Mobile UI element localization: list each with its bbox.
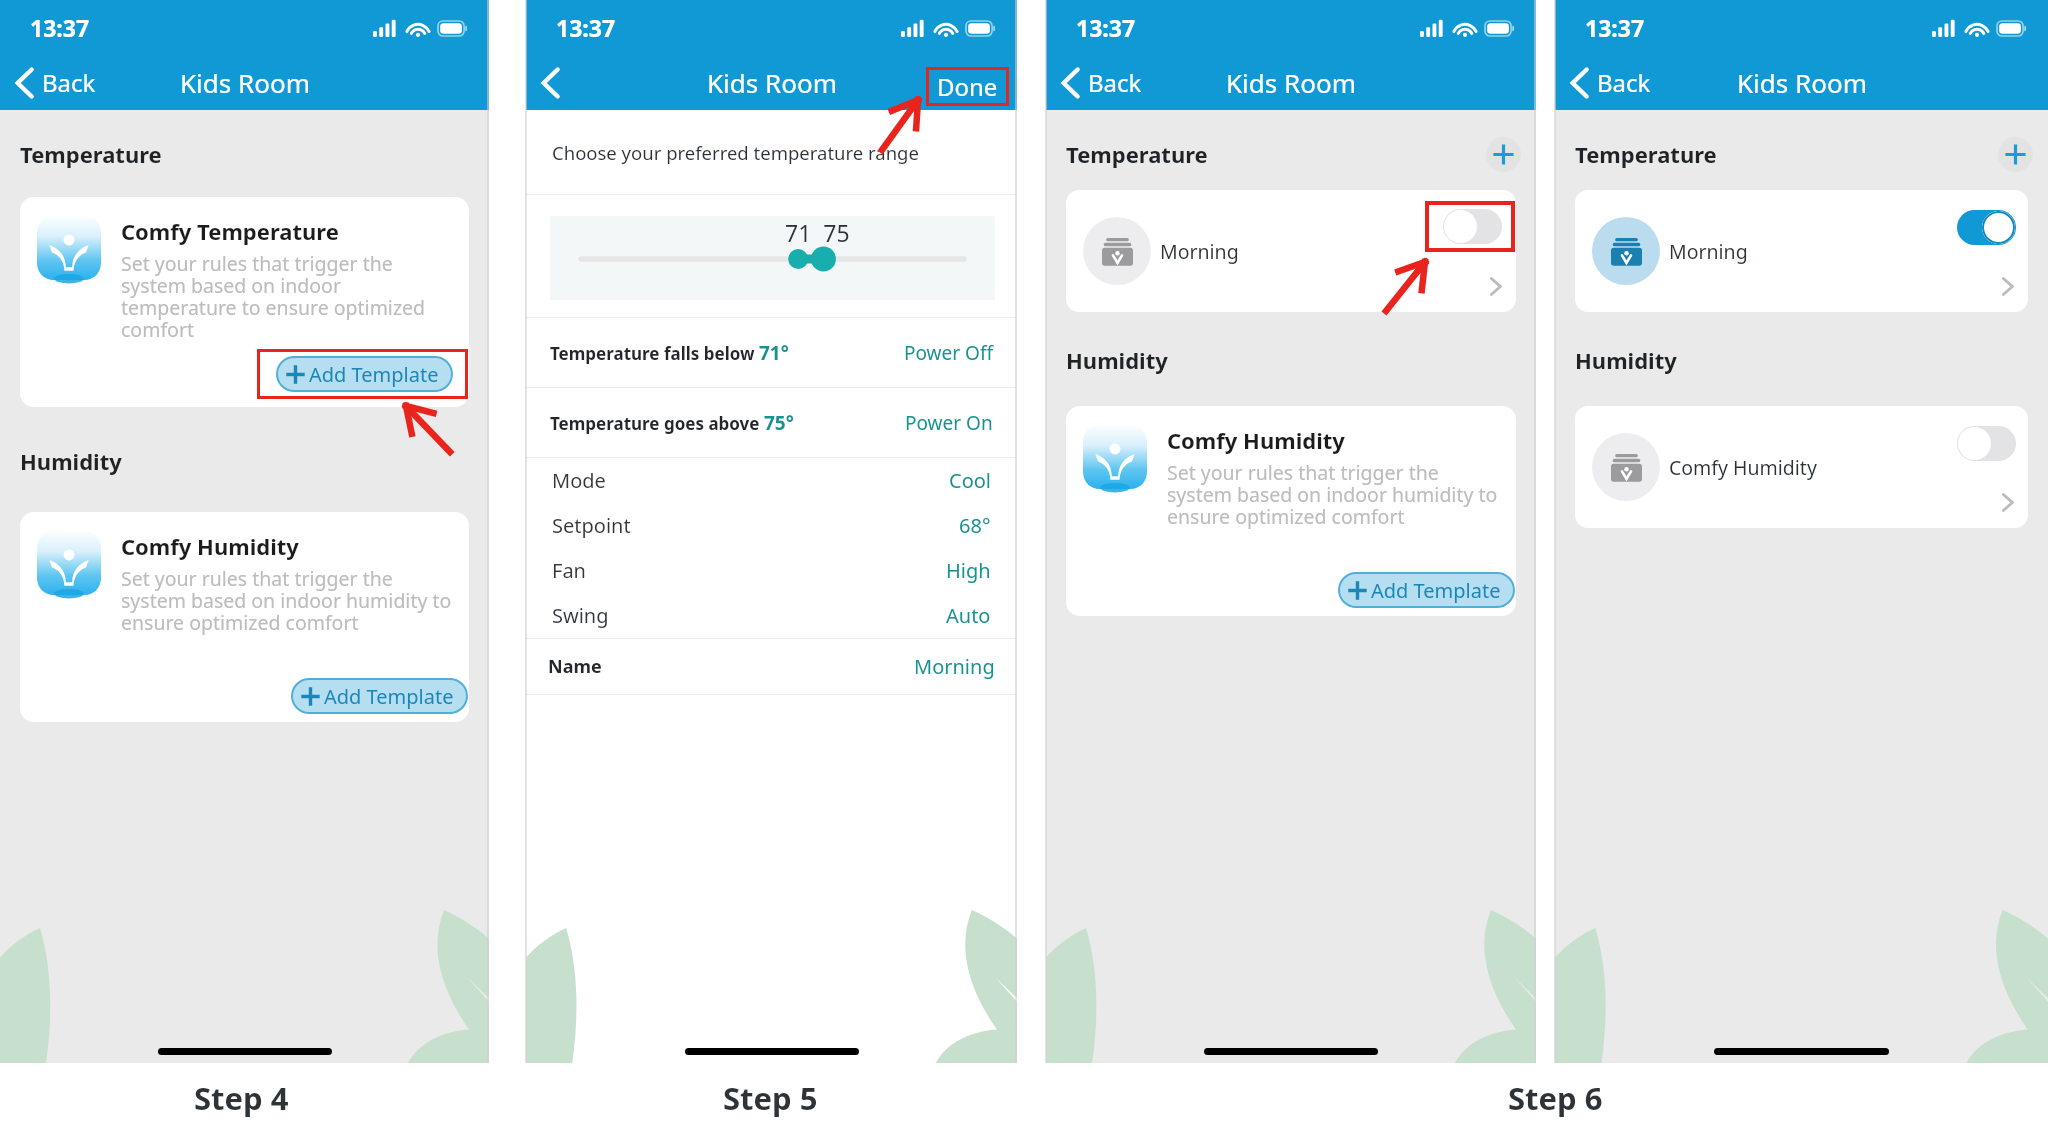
- staticText: Step 4: [194, 1077, 289, 1119]
- button[interactable]: Add Template: [291, 678, 468, 714]
- button[interactable]: Back: [0, 60, 106, 105]
- staticText: Morning: [914, 653, 995, 680]
- button[interactable]: Fan: [526, 548, 1017, 593]
- staticText: Temperature: [1575, 139, 1717, 169]
- button[interactable]: Turn on: [1957, 426, 2016, 461]
- staticText: Comfy Temperature: [121, 216, 339, 246]
- staticText: Kids Room: [1737, 65, 1867, 100]
- staticText: 71 75: [785, 217, 850, 248]
- staticText: Step 6: [1508, 1077, 1603, 1119]
- staticText: Back: [1597, 66, 1651, 99]
- staticText: Back: [42, 66, 96, 99]
- staticText: Kids Room: [180, 65, 310, 100]
- button[interactable]: Temperature falls below 71°: [526, 318, 1017, 387]
- button[interactable]: Comfy Humidity: [1575, 406, 2028, 528]
- button[interactable]: Turn on: [1443, 209, 1502, 244]
- other: Open details: [2001, 493, 2014, 512]
- staticText: 13:37: [30, 12, 90, 43]
- other: Open details: [2001, 277, 2014, 296]
- staticText: Set your rules that trigger the system b…: [121, 250, 461, 343]
- staticText: 13:37: [556, 12, 616, 43]
- staticText: Set your rules that trigger the system b…: [121, 565, 461, 636]
- staticText: Cool: [949, 467, 991, 494]
- staticText: Humidity: [1066, 345, 1168, 375]
- staticText: Temperature goes above 75°: [550, 410, 794, 436]
- button[interactable]: Setpoint: [526, 503, 1017, 548]
- staticText: Auto: [946, 602, 991, 629]
- button[interactable]: Turn off: [1957, 210, 2016, 245]
- button[interactable]: Add Template: [276, 356, 453, 392]
- button[interactable]: Back: [1046, 60, 1152, 105]
- button[interactable]: Morning: [1066, 190, 1516, 312]
- staticText: Power Off: [904, 340, 993, 366]
- button[interactable]: Back: [526, 62, 569, 104]
- staticText: Choose your preferred temperature range: [552, 140, 919, 165]
- button[interactable]: Add template: [1486, 137, 1521, 172]
- staticText: Done: [937, 70, 998, 103]
- staticText: Humidity: [1575, 345, 1677, 375]
- button[interactable]: Done: [926, 67, 1009, 106]
- staticText: Add Template: [324, 683, 454, 710]
- staticText: Temperature: [1066, 139, 1208, 169]
- staticText: Morning: [1160, 238, 1239, 265]
- staticText: Power On: [905, 410, 993, 436]
- staticText: High: [946, 557, 991, 584]
- staticText: Morning: [1669, 238, 1748, 265]
- staticText: Mode: [552, 467, 606, 494]
- staticText: Name: [548, 654, 602, 679]
- button[interactable]: Temperature goes above 75°: [526, 388, 1017, 457]
- staticText: Kids Room: [707, 65, 837, 100]
- button[interactable]: Name: [526, 639, 1017, 694]
- staticText: Temperature: [20, 139, 162, 169]
- staticText: Comfy Humidity: [1167, 425, 1345, 455]
- button[interactable]: Swing: [526, 593, 1017, 638]
- staticText: 13:37: [1585, 12, 1645, 43]
- staticText: Setpoint: [552, 512, 631, 539]
- staticText: 68°: [959, 512, 991, 539]
- staticText: 13:37: [1076, 12, 1136, 43]
- staticText: Comfy Humidity: [121, 531, 299, 561]
- button[interactable]: Mode: [526, 458, 1017, 503]
- staticText: Add Template: [309, 361, 439, 388]
- staticText: Kids Room: [1226, 65, 1356, 100]
- staticText: Add Template: [1371, 577, 1501, 604]
- button[interactable]: Add Template: [1338, 572, 1515, 608]
- staticText: Comfy Humidity: [1669, 454, 1817, 481]
- staticText: Step 5: [723, 1077, 818, 1119]
- staticText: Back: [1088, 66, 1142, 99]
- button[interactable]: Add template: [1998, 137, 2033, 172]
- staticText: Swing: [552, 602, 609, 629]
- button[interactable]: Morning: [1575, 190, 2028, 312]
- staticText: Humidity: [20, 446, 122, 476]
- other: Open details: [1489, 277, 1502, 296]
- staticText: Temperature falls below 71°: [550, 340, 789, 366]
- staticText: Set your rules that trigger the system b…: [1167, 459, 1508, 530]
- button[interactable]: Back: [1555, 60, 1661, 105]
- staticText: Fan: [552, 557, 586, 584]
